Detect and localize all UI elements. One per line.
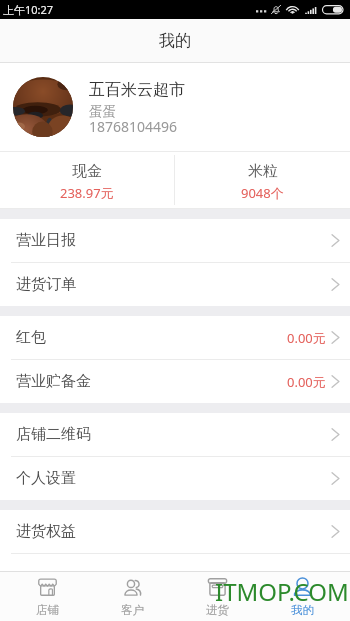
staticText: 进货订单 [16,275,76,294]
staticText: 店铺二维码 [16,425,91,444]
staticText: 18768104496 [89,117,178,136]
staticText: 店铺 [36,603,59,617]
staticText: 我的 [291,603,314,617]
button[interactable]: 五百米云超市 [0,63,350,151]
staticText: 蛋蛋 [89,103,116,120]
button[interactable]: Customers [90,572,175,621]
staticText: 五百米云超市 [89,80,185,100]
staticText: 0.00元 [287,329,326,347]
staticText: 红包 [16,328,46,347]
button[interactable]: 店铺二维码 [0,413,350,456]
button[interactable]: 营业贮备金 [0,360,350,403]
staticText: 个人设置 [16,469,76,488]
button[interactable]: Shop [5,572,90,621]
staticText: 我的 [159,31,191,51]
button[interactable]: 进货订单 [0,263,350,306]
button[interactable]: 米粒 [175,152,350,208]
button[interactable]: 进货权益 [0,510,350,553]
staticText: 营业贮备金 [16,372,91,391]
staticText: 米粒 [248,162,278,181]
staticText: ITMOP.COM [215,575,349,608]
button[interactable]: Purchase [175,572,260,621]
staticText: 9048个 [241,184,284,202]
button[interactable]: 红包 [0,316,350,359]
button[interactable]: 营业日报 [0,219,350,262]
button[interactable]: 现金 [0,152,174,208]
staticText: 现金 [72,162,102,181]
staticText: 进货 [206,603,229,617]
staticText: 客户 [121,603,144,617]
staticText: 上午10:27 [3,2,54,17]
staticText: 238.97元 [60,184,114,202]
staticText: 进货权益 [16,522,76,541]
button[interactable]: 个人设置 [0,457,350,500]
button[interactable]: Mine [260,572,345,621]
staticText: 营业日报 [16,231,76,250]
staticText: 0.00元 [287,373,326,391]
